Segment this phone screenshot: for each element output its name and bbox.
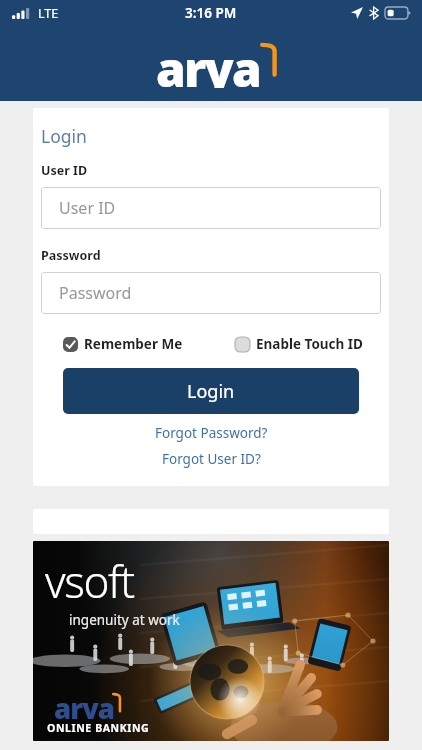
button[interactable]: User ID [41, 187, 381, 229]
button[interactable]: Forgot User ID? [41, 450, 381, 468]
button[interactable]: vsoft arya online banking promotion [33, 541, 389, 741]
button[interactable]: Enable Touch ID [235, 335, 363, 353]
button[interactable]: Forgot Password? [41, 424, 381, 442]
staticText: ingenuity at work [69, 611, 180, 629]
staticText: ONLINE BANKING [47, 721, 150, 735]
button[interactable]: Login [63, 368, 359, 414]
staticText: Enable Touch ID [256, 335, 363, 353]
staticText: Forgot User ID? [162, 450, 261, 468]
staticText: Password [41, 247, 101, 264]
staticText: User ID [59, 197, 116, 219]
staticText: Password [59, 282, 132, 304]
staticText: User ID [41, 162, 88, 179]
button[interactable]: Password [41, 272, 381, 314]
staticText: arya [54, 689, 114, 719]
staticText: Forgot Password? [155, 424, 268, 442]
button[interactable]: Remember Me [63, 335, 183, 353]
staticText: Remember Me [84, 335, 183, 353]
staticText: Login [187, 379, 235, 404]
staticText: 3:16 PM [185, 4, 237, 22]
staticText: vsoft [45, 551, 134, 611]
staticText: arya [156, 36, 260, 88]
staticText: LTE [38, 5, 59, 22]
staticText: Login [41, 124, 87, 148]
